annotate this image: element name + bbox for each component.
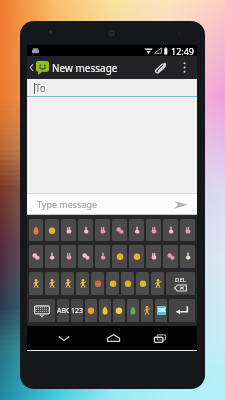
button[interactable]: Send (173, 196, 189, 212)
button[interactable]: Key (76, 272, 89, 295)
button[interactable]: Key (136, 272, 149, 295)
button[interactable]: Key (151, 272, 164, 295)
button[interactable]: Key (155, 299, 167, 322)
button[interactable]: Key (29, 219, 43, 241)
button[interactable]: Key (29, 272, 43, 295)
button[interactable]: Key (61, 219, 76, 241)
button[interactable]: More options (177, 56, 191, 79)
button[interactable]: Back (50, 326, 78, 350)
button[interactable]: Key (146, 219, 161, 241)
staticText: OK (158, 307, 166, 314)
staticText: 12:49 (171, 45, 195, 56)
button[interactable]: Key (95, 219, 110, 241)
button[interactable]: Key (57, 299, 69, 322)
button[interactable]: Key (78, 219, 93, 241)
button[interactable]: Key (169, 299, 195, 322)
button[interactable]: Key (129, 219, 144, 241)
button[interactable]: Key (166, 272, 195, 295)
button[interactable]: Key (45, 219, 59, 241)
button[interactable]: Key (112, 245, 127, 268)
button[interactable]: Key (61, 272, 74, 295)
button[interactable]: Key (85, 299, 97, 322)
button[interactable]: Key (45, 272, 59, 295)
staticText: DEL (175, 276, 186, 284)
button[interactable]: Key (141, 299, 153, 322)
staticText: Type message (37, 198, 98, 210)
button[interactable]: Key (180, 245, 195, 268)
button[interactable]: Attach (148, 56, 171, 79)
button[interactable]: Key (163, 245, 178, 268)
button[interactable]: Key (163, 219, 178, 241)
staticText: To (35, 81, 46, 95)
button[interactable]: Key (29, 299, 55, 322)
button[interactable]: Key (45, 245, 59, 268)
button[interactable]: Key (180, 219, 195, 241)
button[interactable]: To (27, 79, 197, 97)
button[interactable]: Key (106, 272, 119, 295)
button[interactable]: Key (29, 245, 43, 268)
button[interactable]: Key (99, 299, 111, 322)
button[interactable]: Recents (146, 326, 174, 350)
button[interactable]: Key (113, 299, 125, 322)
button[interactable]: Key (71, 299, 83, 322)
staticText: ABC (57, 306, 69, 316)
button[interactable]: Key (91, 272, 104, 295)
button[interactable]: Key (129, 245, 144, 268)
button[interactable]: Key (95, 245, 110, 268)
button[interactable]: Key (112, 219, 127, 241)
button[interactable]: New message (27, 56, 121, 79)
button[interactable]: Key (78, 245, 93, 268)
staticText: New message (52, 61, 118, 75)
button[interactable]: Key (121, 272, 134, 295)
button[interactable]: Key (127, 299, 139, 322)
button[interactable]: Home (99, 326, 127, 350)
button[interactable]: Key (61, 245, 76, 268)
staticText: 123 (71, 306, 83, 316)
button[interactable]: Key (146, 245, 161, 268)
